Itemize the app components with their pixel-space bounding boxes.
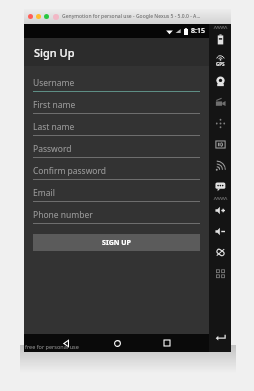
staticText: Email xyxy=(33,187,55,199)
button[interactable]: Rotate xyxy=(209,242,231,263)
button[interactable]: Username xyxy=(33,75,200,97)
button[interactable]: Volume down xyxy=(209,221,231,242)
button[interactable]: Back xyxy=(209,327,231,348)
button[interactable]: First name xyxy=(33,97,200,119)
button[interactable]: Back xyxy=(58,335,74,351)
button[interactable]: GPS xyxy=(209,50,231,71)
staticText: Sign Up xyxy=(34,45,75,60)
button[interactable]: Camera xyxy=(209,71,231,92)
staticText: 8:15 xyxy=(191,26,205,36)
staticText: First name xyxy=(33,99,76,111)
staticText: GPS xyxy=(216,61,225,67)
button[interactable]: Confirm password xyxy=(33,163,200,185)
staticText: Password xyxy=(33,143,72,155)
button[interactable]: Recent apps xyxy=(159,335,175,351)
button[interactable]: Volume up xyxy=(209,200,231,221)
button[interactable]: Battery xyxy=(209,29,231,50)
button[interactable]: Password xyxy=(33,141,200,163)
staticText: Username xyxy=(33,77,75,89)
button[interactable]: SIGN UP xyxy=(33,234,200,251)
staticText: Genymotion for personal use - Google Nex… xyxy=(62,13,201,20)
button[interactable]: Home xyxy=(109,335,125,351)
staticText: Confirm password xyxy=(33,165,107,177)
button[interactable]: Email xyxy=(33,185,200,207)
button[interactable]: Phone number xyxy=(33,207,200,229)
button[interactable]: Identifiers xyxy=(209,134,231,155)
button[interactable]: Last name xyxy=(33,119,200,141)
button[interactable]: Messaging xyxy=(209,176,231,197)
button[interactable]: Screen record xyxy=(209,92,231,113)
staticText: Phone number xyxy=(33,209,93,221)
staticText: Last name xyxy=(33,121,75,133)
staticText: SIGN UP xyxy=(102,238,131,248)
button[interactable]: Screenshot xyxy=(209,263,231,284)
button[interactable]: Accelerometer xyxy=(209,113,231,134)
staticText: free for personal use xyxy=(25,343,79,350)
button[interactable]: Network xyxy=(209,155,231,176)
